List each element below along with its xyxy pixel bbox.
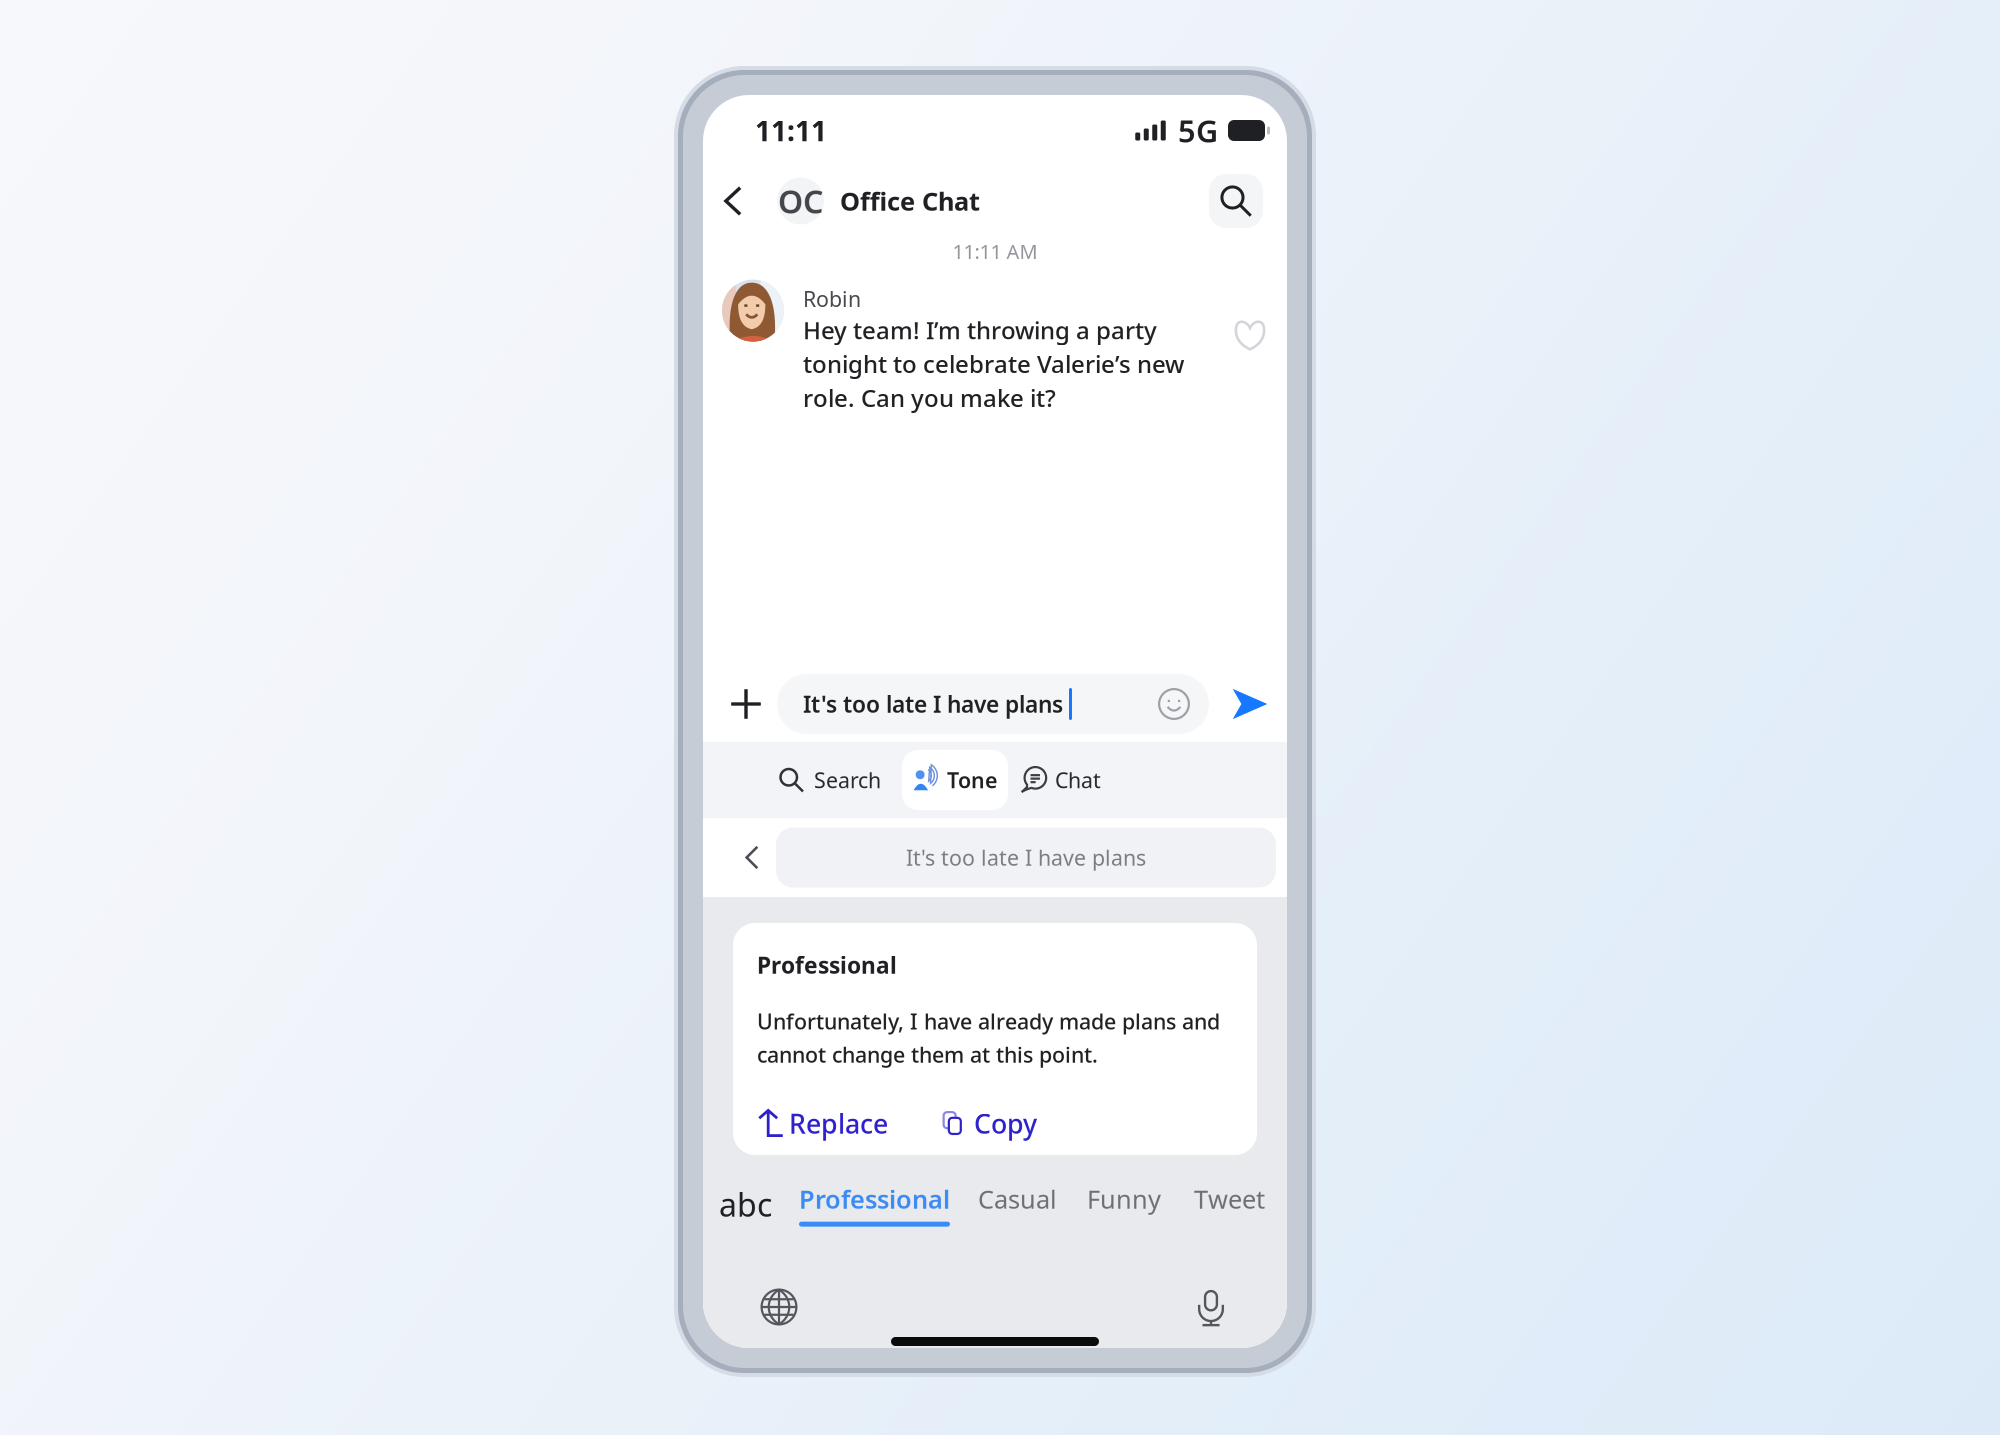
button[interactable]: Emoji xyxy=(1153,683,1195,725)
button[interactable]: Replace xyxy=(757,1106,888,1141)
button[interactable]: Dictate xyxy=(1181,1277,1241,1337)
button[interactable]: It's too late I have plans xyxy=(776,827,1276,887)
staticText: Unfortunately, I have already made plans… xyxy=(757,1007,1220,1035)
staticText: It's too late I have plans xyxy=(803,689,1063,719)
staticText: Robin xyxy=(803,285,861,313)
button[interactable]: Like xyxy=(1228,314,1272,358)
staticText: cannot change them at this point. xyxy=(757,1040,1098,1069)
staticText: Copy xyxy=(974,1106,1037,1141)
staticText: Professional xyxy=(757,950,897,980)
staticText: OC xyxy=(778,180,823,222)
button[interactable]: Back xyxy=(709,173,757,229)
staticText: Casual xyxy=(978,1182,1057,1216)
button[interactable]: Tone xyxy=(902,750,1008,810)
staticText: 11:11 xyxy=(755,112,827,149)
button[interactable]: abc xyxy=(719,1182,772,1225)
button[interactable]: Tweet xyxy=(1194,1182,1265,1216)
staticText: Search xyxy=(814,766,881,794)
staticText: 5G xyxy=(1178,110,1218,151)
staticText: Professional xyxy=(799,1182,950,1216)
button[interactable]: Chat xyxy=(1014,752,1107,808)
staticText: Office Chat xyxy=(840,184,980,218)
staticText: 11:11 AM xyxy=(952,238,1037,265)
staticText: Tone xyxy=(947,766,997,794)
button[interactable]: Search xyxy=(771,752,889,808)
button[interactable]: Send xyxy=(1225,679,1275,729)
staticText: Tweet xyxy=(1194,1182,1265,1216)
button[interactable]: Casual xyxy=(978,1182,1057,1216)
staticText: Replace xyxy=(789,1106,888,1141)
button[interactable]: Previous xyxy=(730,835,774,879)
staticText: abc xyxy=(719,1183,772,1225)
button[interactable]: OC xyxy=(757,177,980,224)
button[interactable]: Professional xyxy=(799,1182,950,1227)
button[interactable]: Copy xyxy=(940,1106,1037,1141)
button[interactable]: Funny xyxy=(1087,1182,1161,1216)
staticText: It's too late I have plans xyxy=(906,843,1146,872)
button[interactable]: Search xyxy=(1209,174,1263,228)
staticText: Funny xyxy=(1087,1182,1161,1216)
staticText: Chat xyxy=(1055,766,1101,794)
staticText: role. Can you make it? xyxy=(803,382,1056,413)
button[interactable]: Change keyboard xyxy=(749,1277,809,1337)
button[interactable]: Add attachment xyxy=(717,675,775,733)
staticText: Hey team! I’m throwing a party xyxy=(803,314,1157,346)
staticText: tonight to celebrate Valerie’s new xyxy=(803,348,1184,380)
